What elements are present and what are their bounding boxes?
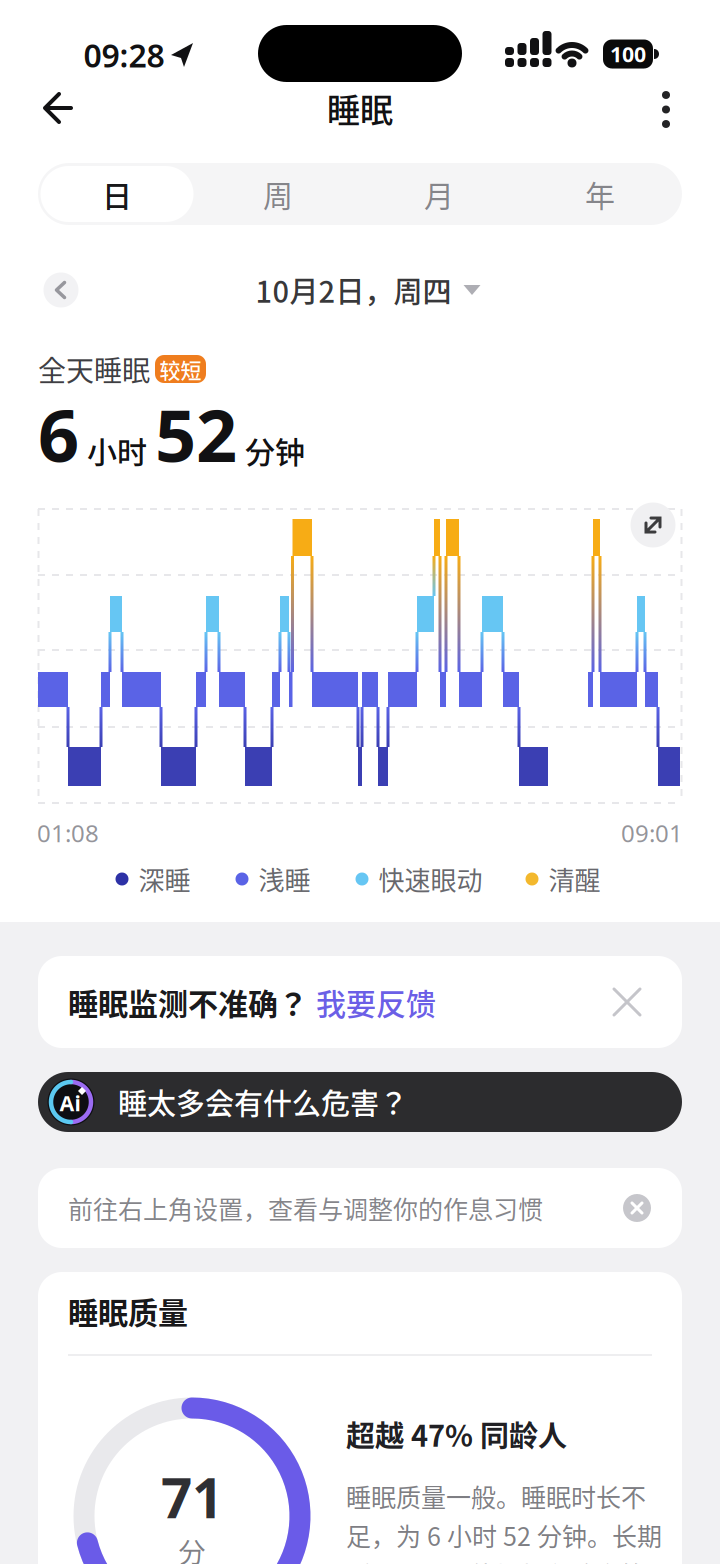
button[interactable]: 月 [359,166,519,222]
staticText: 6 [38,386,79,482]
staticText: 01:08 [37,817,99,849]
staticText: 月 [424,172,454,216]
staticText: 足，为 6 小时 52 分钟。长期 [346,1517,662,1553]
staticText: 睡太多会有什么危害？ [118,1081,408,1123]
staticText: 深睡 [138,860,190,898]
staticText: 快速眼动 [378,860,482,898]
staticText: 睡眠质量 [68,1289,188,1333]
staticText: 52 [155,386,237,482]
staticText: 100 [610,40,646,68]
button[interactable]: 日 [40,166,193,222]
button[interactable]: Ai [38,1072,682,1132]
staticText: 睡眠质量一般。睡眠时长不 [346,1478,646,1514]
staticText: 超越 47% 同龄人 [346,1413,567,1455]
button[interactable]: Dismiss [623,1194,651,1222]
staticText: 我要反馈 [316,980,436,1024]
staticText: 09:01 [621,817,683,849]
staticText: 浅睡 [258,860,310,898]
button[interactable]: Expand chart [630,502,675,547]
staticText: 较短 [159,354,201,384]
staticText: 周 [263,172,293,216]
staticText: 睡眠监测不准确？ [68,980,308,1024]
staticText: Ai [59,1089,80,1117]
button[interactable]: Back [31,86,85,130]
staticText: 10月2日，周四 [255,269,451,311]
button[interactable]: Dismiss [614,989,640,1015]
staticText: 睡眠 [327,84,393,132]
staticText: 全天睡眠 [38,349,150,389]
button[interactable]: 我要反馈 [316,980,436,1024]
staticText: 清醒 [548,860,600,898]
button[interactable]: More [644,87,688,131]
button[interactable]: 10月2日，周四 [255,269,480,311]
staticText: 09:28 [83,34,164,76]
button[interactable]: Previous day [43,272,78,307]
staticText: 分 [178,1531,205,1564]
staticText: 日 [102,172,132,216]
staticText: 年 [585,172,615,216]
staticText: 前往右上角设置，查看与调整你的作息习惯 [68,1190,543,1226]
staticText: 71 [161,1461,223,1533]
button[interactable]: 年 [520,166,680,222]
staticText: 分钟 [245,428,305,472]
button[interactable]: 周 [198,166,358,222]
staticText: 小时 [87,428,147,472]
